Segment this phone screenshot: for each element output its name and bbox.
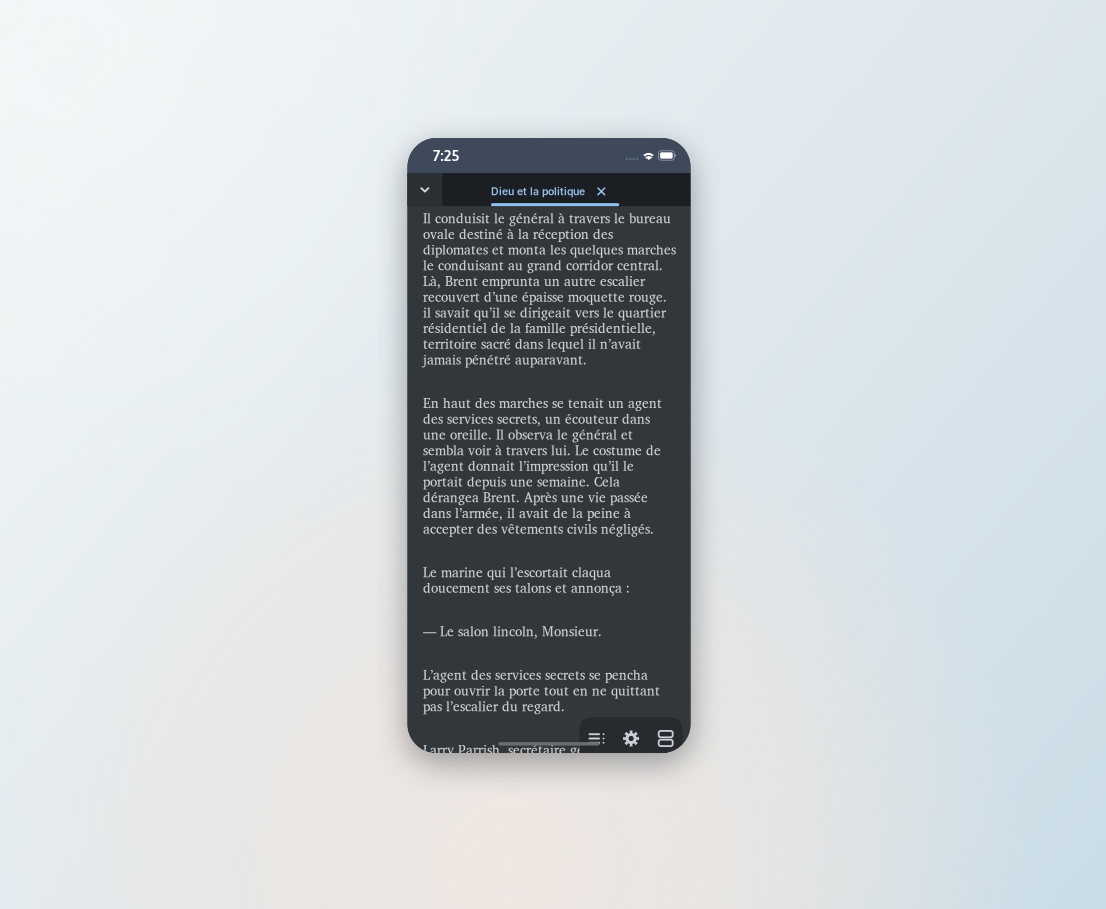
staticText: L’agent des services secrets se pencha p…	[423, 667, 660, 714]
staticText: Dieu et la politique	[491, 185, 585, 198]
staticText: En haut des marches se tenait un agent d…	[423, 395, 662, 536]
button[interactable]: Réglages d’affichage	[614, 717, 648, 760]
button[interactable]: Dieu et la politique	[491, 173, 619, 206]
button[interactable]: Mise en page	[648, 717, 683, 760]
staticText: Larry Parrish, secrétaire général de la …	[423, 742, 649, 773]
staticText: Le marine qui l’escortait claqua douceme…	[423, 564, 630, 596]
staticText: — Le salon lincoln, Monsieur.	[423, 623, 602, 639]
button[interactable]: Table des matières	[579, 717, 614, 760]
button[interactable]: Masquer la barre d’onglets	[407, 173, 442, 206]
staticText: 7:25	[432, 147, 459, 164]
staticText: Il conduisit le général à travers le bur…	[423, 210, 676, 367]
